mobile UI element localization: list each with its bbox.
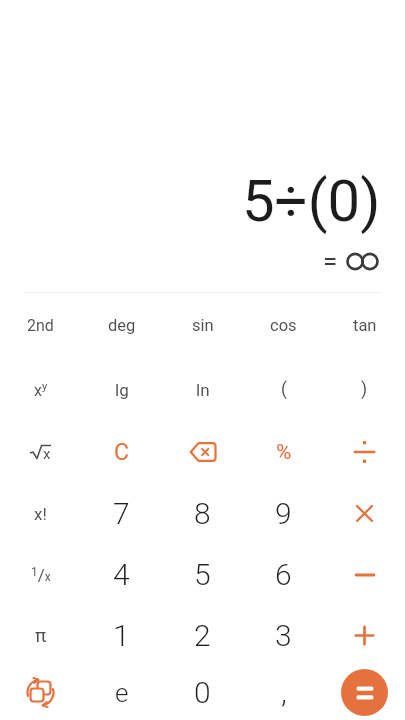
button[interactable]: 0 [162, 665, 243, 720]
button[interactable]: ln [162, 358, 243, 421]
button[interactable]: 9 [243, 483, 324, 544]
button[interactable]: lg [81, 358, 162, 421]
staticText: lg [115, 380, 129, 400]
button[interactable]: 6 [243, 544, 324, 605]
staticText: cos [270, 316, 297, 335]
staticText: tan [353, 316, 377, 335]
staticText: xy [34, 380, 48, 400]
staticText: 5÷(0) [242, 167, 381, 235]
button[interactable] [324, 483, 405, 544]
staticText: π [35, 624, 47, 646]
button[interactable] [324, 605, 405, 665]
button[interactable]: 8 [162, 483, 243, 544]
button[interactable]: x [0, 421, 81, 483]
staticText: 2nd [27, 316, 54, 335]
button[interactable]: , [243, 665, 324, 720]
staticText: = [323, 246, 338, 276]
staticText: % [276, 440, 292, 465]
button[interactable]: sin [162, 293, 243, 358]
staticText: x [43, 445, 51, 462]
staticText: deg [108, 316, 136, 335]
button[interactable]: π [0, 605, 81, 665]
button[interactable]: tan [324, 293, 405, 358]
staticText: x! [34, 504, 47, 524]
staticText: 6 [275, 557, 292, 592]
staticText: 4 [113, 557, 130, 592]
staticText: 3 [275, 618, 292, 653]
button[interactable] [341, 669, 388, 716]
button[interactable]: deg [81, 293, 162, 358]
button[interactable] [324, 544, 405, 605]
staticText: 5 [194, 557, 211, 592]
button[interactable]: C [81, 421, 162, 483]
button[interactable]: xy [0, 358, 81, 421]
button[interactable]: ) [324, 358, 405, 421]
staticText: 0 [194, 675, 211, 710]
button[interactable] [324, 421, 405, 483]
staticText: ( [281, 379, 287, 400]
staticText: e [115, 678, 129, 708]
button[interactable]: 5 [162, 544, 243, 605]
button[interactable]: x! [0, 483, 81, 544]
staticText: sin [192, 316, 214, 335]
button[interactable]: 1 [81, 605, 162, 665]
button[interactable]: 3 [243, 605, 324, 665]
staticText: 1 [113, 618, 130, 653]
button[interactable]: 2nd [0, 293, 81, 358]
staticText: ) [361, 379, 368, 400]
staticText: 1/x [31, 565, 51, 585]
button[interactable] [162, 421, 243, 483]
button[interactable]: ( [243, 358, 324, 421]
staticText: , [281, 675, 287, 710]
button[interactable]: cos [243, 293, 324, 358]
button[interactable] [324, 665, 405, 720]
staticText: ln [196, 380, 210, 400]
staticText: 8 [194, 496, 211, 531]
button[interactable]: 2 [162, 605, 243, 665]
staticText: 2 [194, 618, 211, 653]
button[interactable]: % [243, 421, 324, 483]
button[interactable]: 1/x [0, 544, 81, 605]
button[interactable]: 7 [81, 483, 162, 544]
staticText: 7 [113, 496, 130, 531]
staticText: 9 [275, 496, 292, 531]
staticText: C [114, 439, 129, 466]
button[interactable]: 4 [81, 544, 162, 605]
button[interactable] [0, 665, 81, 720]
button[interactable]: e [81, 665, 162, 720]
